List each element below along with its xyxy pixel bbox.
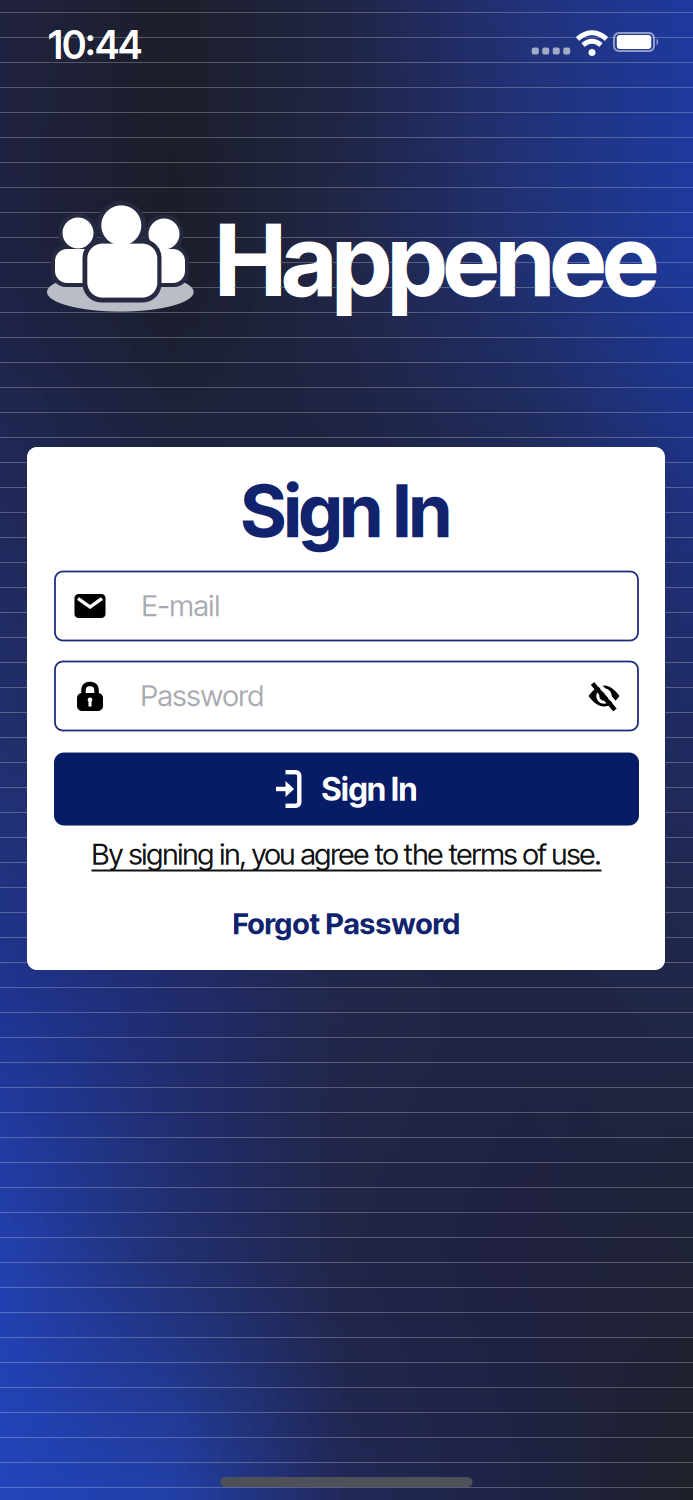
staticText: By signing in, you agree to the terms of… (91, 837, 601, 871)
staticText: Happenee (215, 202, 659, 318)
button[interactable]: E-mail (54, 570, 639, 641)
button[interactable]: Show password (588, 681, 620, 711)
button[interactable]: By signing in, you agree to the terms of… (91, 837, 601, 871)
staticText: 10:44 (48, 22, 142, 68)
button[interactable]: Sign In (54, 752, 639, 825)
staticText: Forgot Password (232, 906, 460, 941)
staticText: Password (140, 678, 263, 713)
button[interactable]: Forgot Password (232, 906, 460, 941)
button[interactable]: Password (54, 660, 639, 731)
staticText: Sign In (321, 770, 417, 808)
staticText: E-mail (141, 588, 220, 623)
staticText: Sign In (241, 468, 452, 553)
